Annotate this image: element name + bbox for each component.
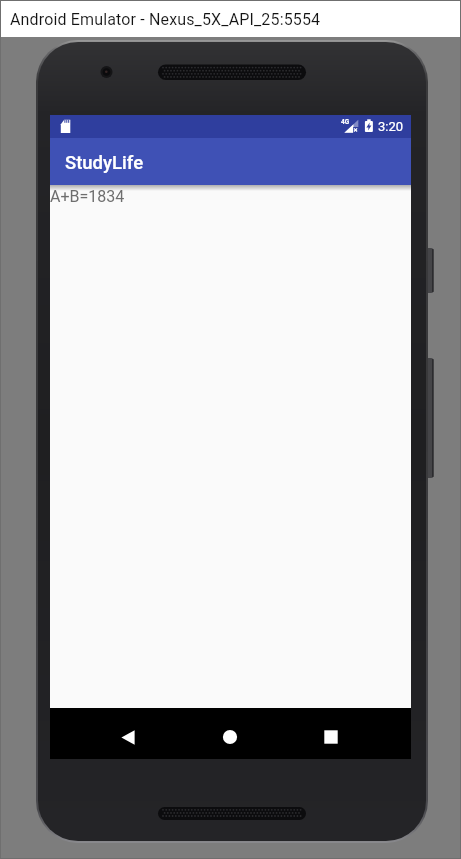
staticText: StudyLife [65, 152, 144, 174]
button[interactable] [104, 708, 152, 759]
staticText: 3:20 [378, 119, 404, 134]
staticText: 4G [341, 118, 350, 126]
staticText: Android Emulator - Nexus_5X_API_25:5554 [10, 10, 321, 29]
button[interactable] [307, 708, 355, 759]
staticText: A+B=1834 [50, 187, 125, 206]
button[interactable] [206, 708, 254, 759]
